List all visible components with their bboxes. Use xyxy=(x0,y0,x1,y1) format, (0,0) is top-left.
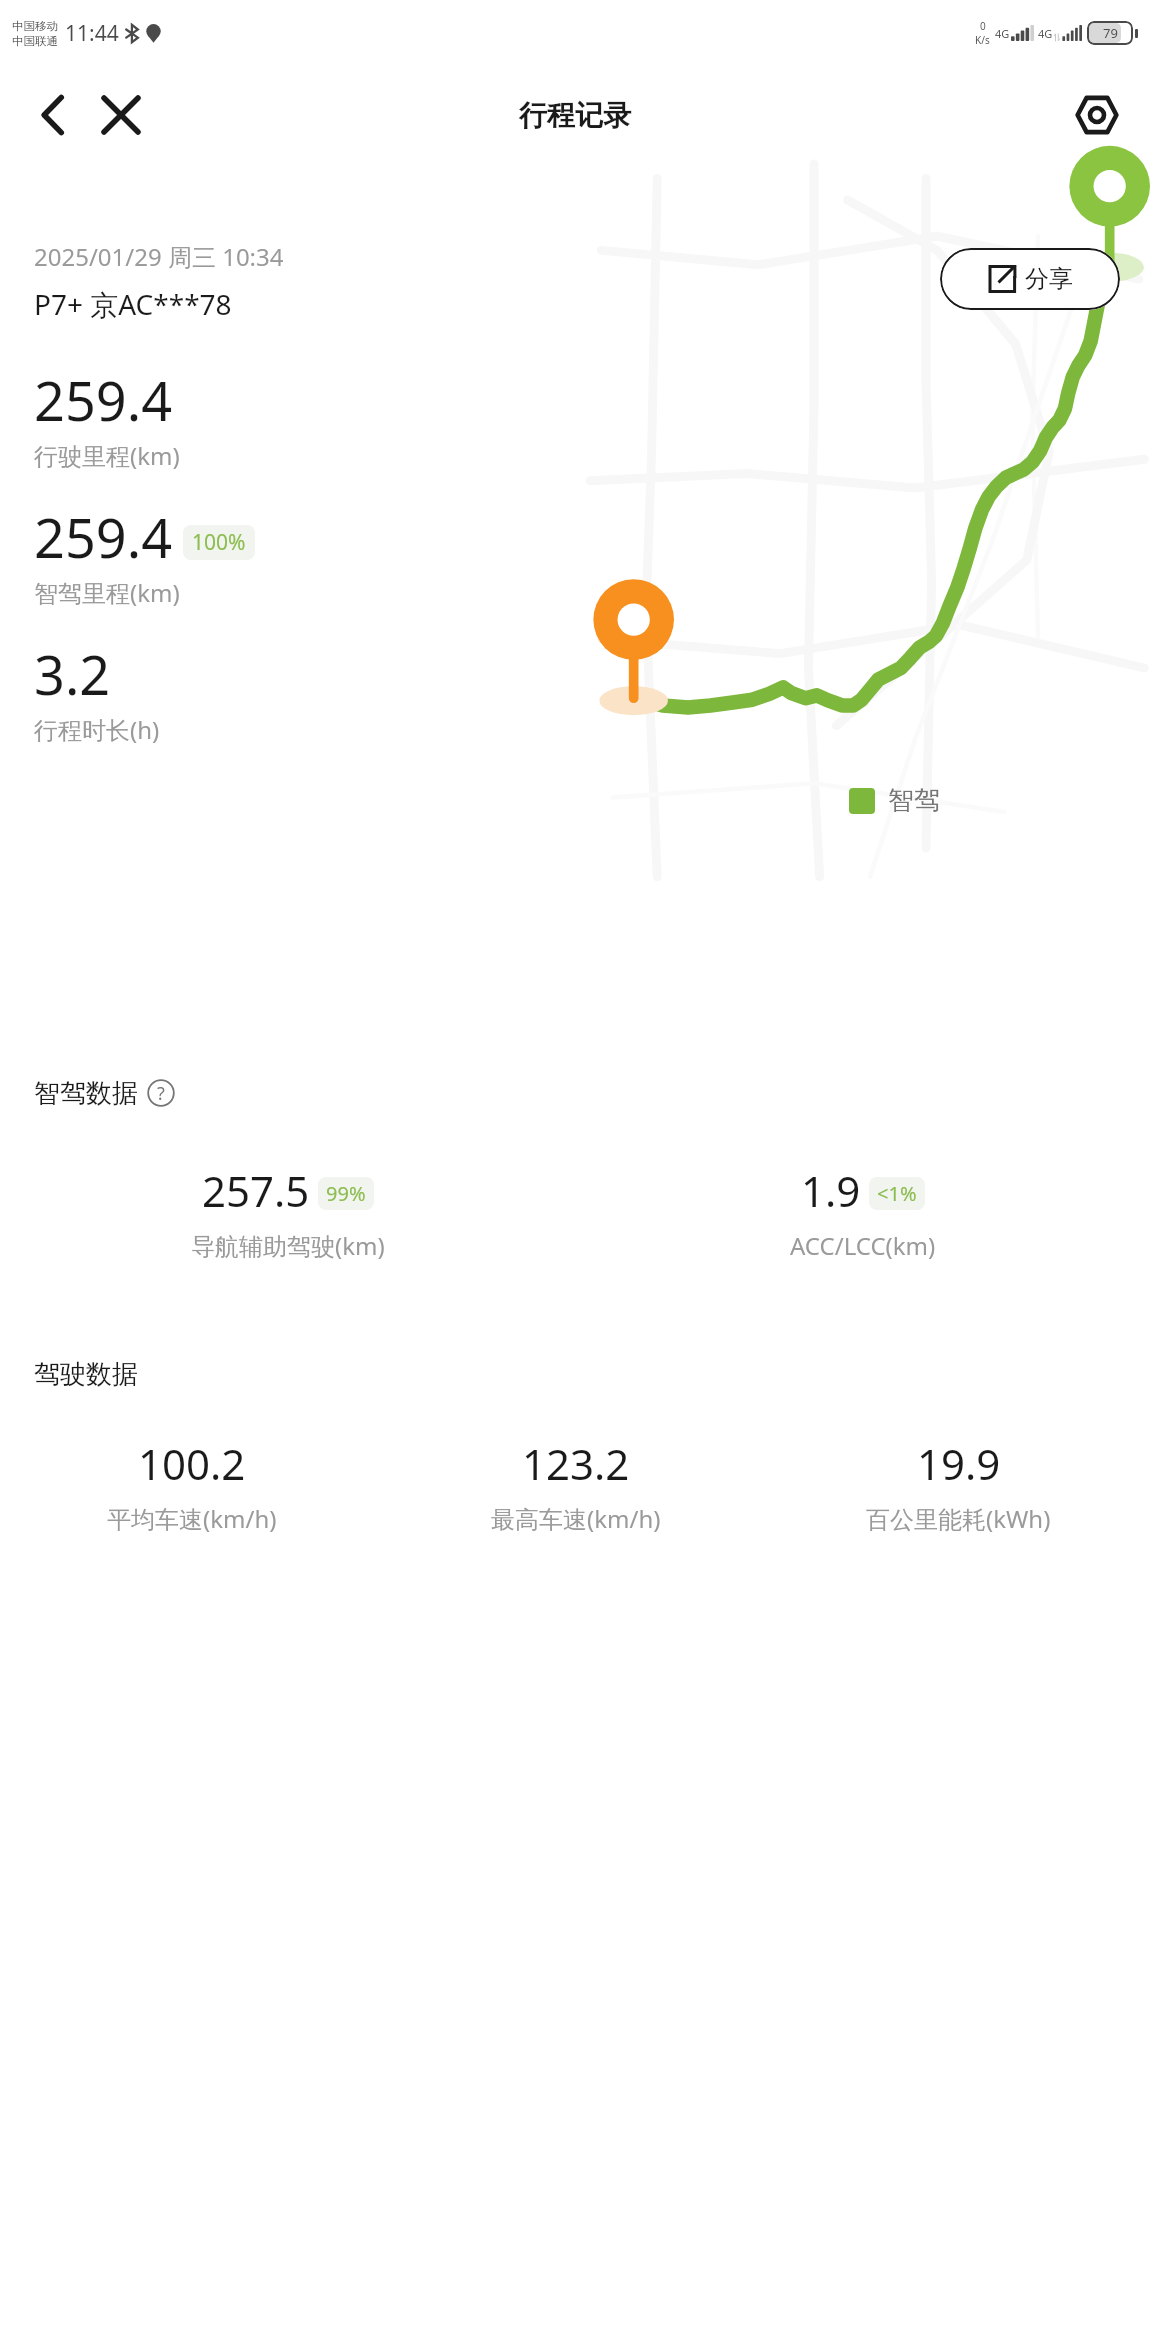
staticText: 行程记录 xyxy=(519,98,631,133)
staticText: <1% xyxy=(877,1180,917,1207)
staticText: P7+ 京AC***78 xyxy=(34,285,232,323)
button[interactable]: Close xyxy=(90,84,152,146)
staticText: 2025/01/29 周三 10:34 xyxy=(34,240,284,273)
staticText: 11:44 xyxy=(65,19,119,48)
staticText: 123.2 xyxy=(522,1435,630,1492)
button[interactable]: Settings xyxy=(1066,84,1128,146)
staticText: 中国移动 xyxy=(12,19,58,33)
button[interactable]: 分享 xyxy=(940,248,1120,310)
staticText: 中国联通 xyxy=(12,34,58,48)
staticText: 最高车速(km/h) xyxy=(491,1502,661,1535)
staticText: 4G xyxy=(995,26,1010,41)
staticText: ACC/LCC(km) xyxy=(790,1229,936,1262)
staticText: 平均车速(km/h) xyxy=(107,1502,277,1535)
staticText: 1.9 xyxy=(801,1162,861,1219)
staticText: 19.9 xyxy=(917,1435,1001,1492)
staticText: 259.4 xyxy=(34,363,173,437)
staticText: 驾驶数据 xyxy=(34,1358,138,1391)
staticText: 259.4 xyxy=(34,500,173,574)
staticText: 百公里能耗(kWh) xyxy=(866,1502,1051,1535)
staticText: 3.2 xyxy=(34,637,111,711)
staticText: ? xyxy=(157,1081,165,1106)
staticText: 79 xyxy=(1103,24,1118,42)
staticText: 行程时长(h) xyxy=(34,713,160,746)
staticText: K/s xyxy=(975,33,990,47)
staticText: 0 xyxy=(980,19,986,33)
staticText: 257.5 xyxy=(202,1162,310,1219)
staticText: 智驾数据 xyxy=(34,1077,138,1110)
staticText: 分享 xyxy=(1025,264,1073,294)
staticText: 智驾里程(km) xyxy=(34,576,180,609)
staticText: 4G xyxy=(1038,26,1053,41)
staticText: 100.2 xyxy=(138,1435,246,1492)
button[interactable]: Help xyxy=(144,1076,178,1110)
staticText: 导航辅助驾驶(km) xyxy=(191,1229,385,1262)
staticText: 99% xyxy=(326,1180,366,1207)
staticText: 100% xyxy=(192,528,246,557)
staticText: 智驾 xyxy=(888,784,940,817)
button[interactable]: Back xyxy=(22,84,84,146)
staticText: 行驶里程(km) xyxy=(34,439,180,472)
